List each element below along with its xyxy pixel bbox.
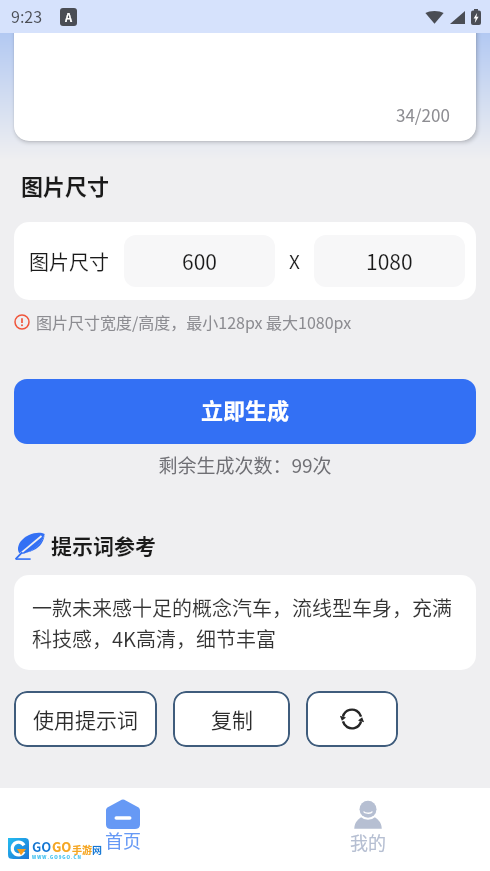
staticText: GO	[52, 837, 72, 856]
staticText: 图片尺寸宽度/高度，最小128px 最大1080px	[36, 310, 352, 333]
button[interactable]: 我的	[245, 788, 490, 871]
staticText: 使用提示词	[33, 704, 138, 734]
staticText: 图片尺寸	[29, 247, 109, 276]
staticText: 34/200	[396, 102, 450, 127]
staticText: A	[65, 9, 73, 25]
staticText: 首页	[105, 827, 141, 853]
staticText: 1080	[366, 246, 413, 276]
staticText: 剩余生成次数：99次	[0, 451, 490, 479]
staticText: 网	[92, 842, 102, 856]
staticText: W W W . G O 9 G O . C N	[32, 854, 81, 861]
button[interactable]: 使用提示词	[14, 691, 157, 747]
staticText: 复制	[211, 704, 253, 734]
button[interactable]: 立即生成	[14, 379, 476, 444]
staticText: 立即生成	[201, 393, 290, 425]
button[interactable]: 首页	[0, 788, 245, 871]
staticText: 图片尺寸	[21, 169, 110, 201]
button[interactable]: 1080	[314, 235, 465, 287]
staticText: 我的	[350, 829, 386, 855]
staticText: GO	[32, 837, 52, 856]
staticText: X	[289, 247, 300, 275]
button[interactable]: 600	[124, 235, 275, 287]
staticText: 提示词参考	[51, 530, 156, 560]
button[interactable]: 换一换	[306, 691, 398, 747]
button[interactable]: 复制	[173, 691, 290, 747]
staticText: 9:23	[11, 4, 43, 27]
staticText: 600	[182, 246, 217, 276]
staticText: 手游	[72, 842, 92, 856]
staticText: 一款未来感十足的概念汽车，流线型车身，充满科技感，4K高清，细节丰富	[32, 593, 460, 653]
